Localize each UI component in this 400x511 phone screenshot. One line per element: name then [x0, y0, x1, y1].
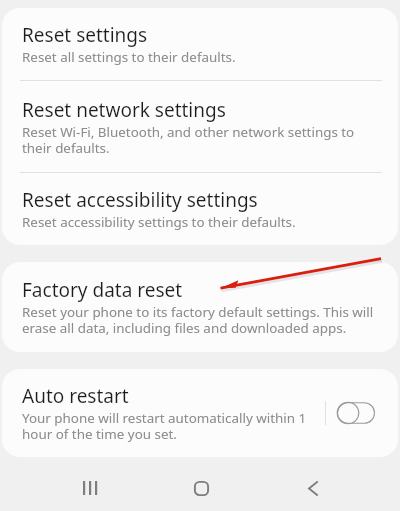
button[interactable]: Back [289, 464, 337, 511]
button[interactable]: Reset settings [2, 8, 398, 80]
staticText: Reset accessibility settings [22, 187, 258, 213]
staticText: Reset all settings to their defaults. [22, 49, 236, 65]
staticText: Auto restart [22, 383, 129, 409]
staticText: Your phone will restart automatically wi… [22, 410, 325, 442]
staticText: Reset your phone to its factory default … [22, 304, 378, 336]
staticText: Factory data reset [22, 277, 183, 303]
button[interactable]: Recent apps [66, 464, 114, 511]
staticText: Reset settings [22, 22, 148, 48]
button[interactable]: Auto restart [2, 369, 398, 457]
button[interactable]: Reset network settings [2, 81, 398, 172]
button[interactable]: Reset accessibility settings [2, 173, 398, 245]
button[interactable]: Factory data reset [2, 262, 398, 352]
staticText: Reset accessibility settings to their de… [22, 214, 296, 230]
staticText: Reset network settings [22, 97, 226, 123]
staticText: Reset Wi-Fi, Bluetooth, and other networ… [22, 124, 378, 156]
button[interactable]: Home [177, 464, 225, 511]
button[interactable]: Auto restart toggle [334, 400, 378, 426]
